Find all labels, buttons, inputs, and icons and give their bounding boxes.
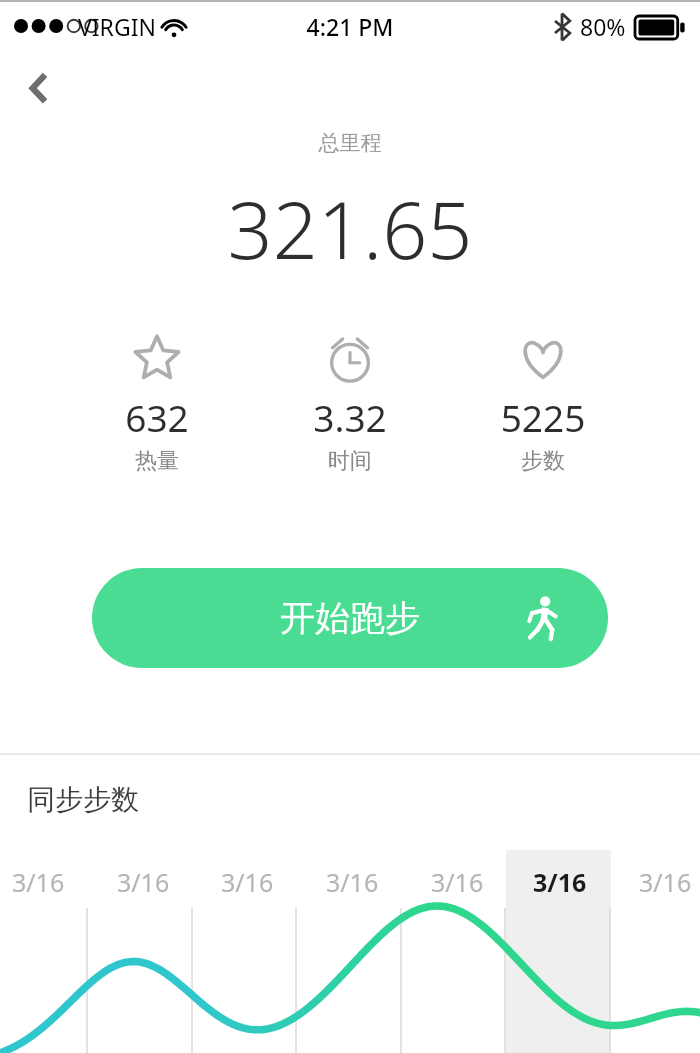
staticText: 3/16 bbox=[639, 865, 692, 899]
staticText: 3/16 bbox=[431, 865, 484, 899]
staticText: 3/16 bbox=[533, 865, 587, 899]
button[interactable]: 3/16 bbox=[623, 861, 700, 903]
staticText: 3/16 bbox=[326, 865, 379, 899]
button[interactable]: 3/16 bbox=[415, 861, 499, 903]
button[interactable]: Back bbox=[12, 60, 70, 118]
staticText: 热量 bbox=[87, 447, 227, 475]
staticText: 3/16 bbox=[117, 865, 170, 899]
button[interactable]: 3/16 bbox=[101, 861, 185, 903]
button[interactable]: 3/16 bbox=[310, 861, 394, 903]
button[interactable]: 632 bbox=[87, 330, 227, 488]
staticText: 321.65 bbox=[0, 175, 700, 283]
staticText: 步数 bbox=[473, 447, 613, 475]
staticText: 4:21 PM bbox=[0, 11, 700, 42]
staticText: 时间 bbox=[280, 447, 420, 475]
button[interactable]: 3/16 bbox=[205, 861, 289, 903]
button[interactable]: 3/16 bbox=[0, 861, 80, 903]
staticText: 632 bbox=[87, 392, 227, 442]
staticText: 5225 bbox=[473, 392, 613, 442]
staticText: 3.32 bbox=[280, 392, 420, 442]
button[interactable]: 开始跑步 bbox=[92, 568, 608, 668]
staticText: 开始跑步 bbox=[280, 596, 420, 640]
staticText: 80% bbox=[580, 11, 626, 42]
button[interactable]: 5225 bbox=[473, 330, 613, 488]
staticText: 同步步数 bbox=[27, 782, 139, 817]
button[interactable]: 3/16 bbox=[518, 861, 602, 903]
staticText: 总里程 bbox=[0, 130, 700, 156]
button[interactable]: 3.32 bbox=[280, 330, 420, 488]
staticText: 3/16 bbox=[12, 865, 65, 899]
staticText: VIRGIN bbox=[78, 11, 156, 42]
staticText: 3/16 bbox=[221, 865, 274, 899]
